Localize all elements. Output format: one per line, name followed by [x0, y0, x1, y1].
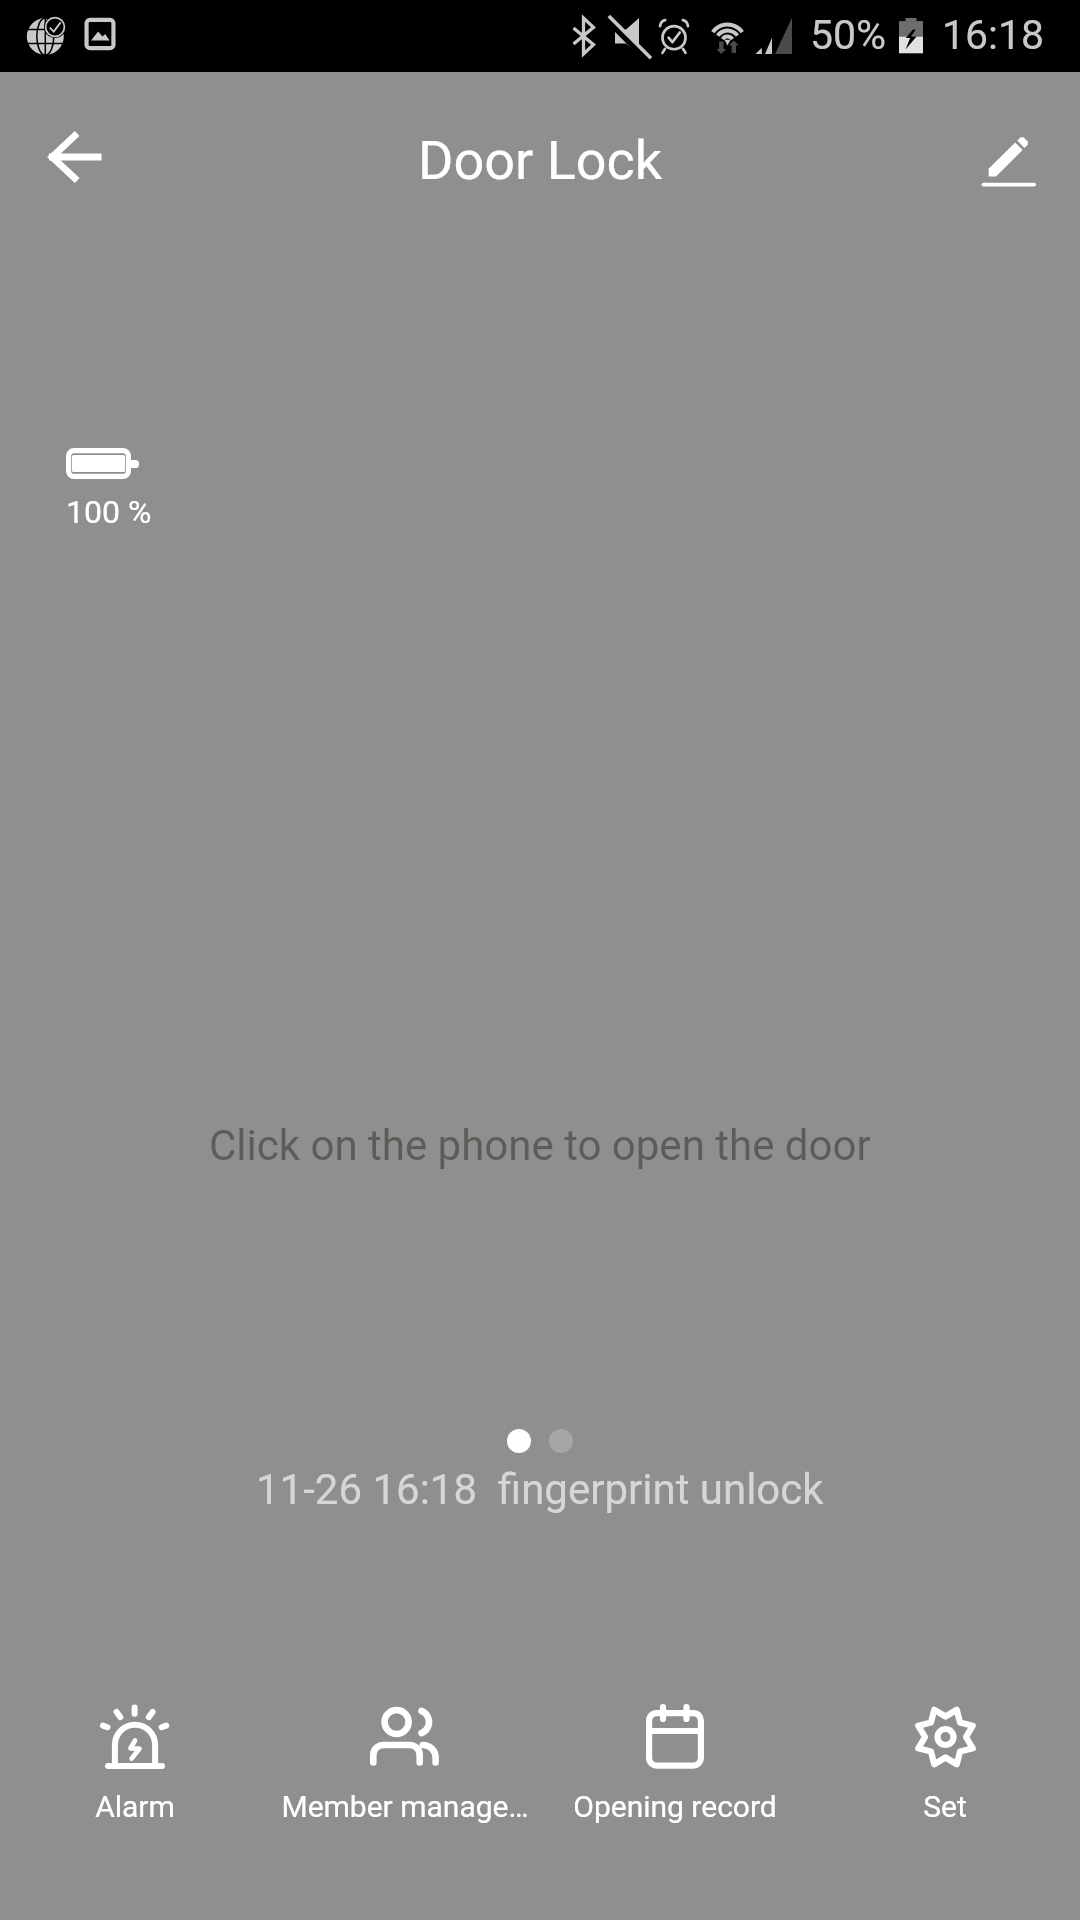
button[interactable]: Edit — [955, 107, 1063, 215]
button[interactable]: Set — [810, 1684, 1080, 1920]
button[interactable]: Member manage… — [270, 1684, 540, 1920]
staticText: Alarm — [95, 1789, 175, 1824]
staticText: Member manage… — [281, 1789, 529, 1824]
staticText: Opening record — [573, 1789, 777, 1824]
button[interactable]: Back — [21, 103, 129, 211]
staticText: Set — [923, 1789, 967, 1824]
staticText: 100 % — [66, 493, 152, 531]
staticText: 11-26 16:18 fingerprint unlock — [256, 1465, 824, 1514]
button[interactable]: Opening record — [540, 1684, 810, 1920]
staticText: Click on the phone to open the door — [209, 1121, 871, 1170]
staticText: 16:18 — [942, 11, 1045, 59]
staticText: 50% — [810, 11, 887, 59]
button[interactable]: Alarm — [0, 1684, 270, 1920]
staticText: Door Lock — [418, 129, 663, 192]
